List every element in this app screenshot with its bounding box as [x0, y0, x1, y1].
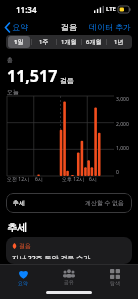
staticText: 오후 12시 — [62, 176, 85, 183]
button[interactable]: 요약 — [0, 20, 32, 34]
staticText: 요약 — [18, 280, 28, 286]
staticText: 2,000 — [116, 121, 129, 128]
staticText: LTE — [106, 5, 116, 13]
staticText: 6시 — [35, 176, 43, 183]
staticText: 오전 12시 — [7, 176, 30, 183]
button[interactable]: 추세 — [6, 193, 132, 213]
button[interactable]: 1년 — [108, 36, 130, 48]
staticText: 추세 — [7, 221, 27, 234]
staticText: 1일 — [14, 38, 24, 46]
staticText: 데이터 추가 — [89, 21, 132, 32]
staticText: 오늘 — [7, 88, 19, 96]
button[interactable]: 6개월 — [83, 36, 105, 48]
staticText: 걸음 — [19, 242, 31, 250]
button[interactable]: 1일 — [8, 36, 30, 48]
button[interactable]: 1개월 — [58, 36, 80, 48]
staticText: 1개월 — [61, 38, 77, 46]
button[interactable]: 1주 — [33, 36, 55, 48]
button[interactable]: 탐색 — [92, 265, 138, 289]
staticText: 지난 22주 동안 걸음 수가 평균적으로 늘었습니다. — [12, 254, 91, 259]
staticText: 계산할 수 없음 — [85, 199, 125, 207]
staticText: 1,000 — [116, 145, 129, 152]
staticText: 요약 — [12, 22, 28, 32]
staticText: 0 — [116, 169, 119, 176]
button[interactable]: 걸음 — [6, 237, 132, 264]
staticText: 걸음 — [60, 76, 74, 85]
staticText: 6시 — [89, 176, 97, 183]
staticText: 총 — [7, 56, 13, 64]
staticText: 탐색 — [110, 280, 120, 286]
staticText: 1년 — [114, 38, 124, 46]
staticText: 걸음 — [61, 22, 77, 32]
staticText: 3,000 — [116, 96, 129, 103]
staticText: 11:34 — [16, 4, 37, 15]
button[interactable]: 공유 — [46, 265, 92, 289]
button[interactable]: 요약 — [0, 265, 46, 289]
staticText: 11,517 — [7, 65, 58, 87]
staticText: 추세 — [13, 199, 25, 207]
staticText: 6개월 — [86, 38, 102, 46]
staticText: 1주 — [39, 38, 49, 46]
staticText: 공유 — [64, 279, 74, 285]
button[interactable]: 데이터 추가 — [83, 19, 138, 34]
